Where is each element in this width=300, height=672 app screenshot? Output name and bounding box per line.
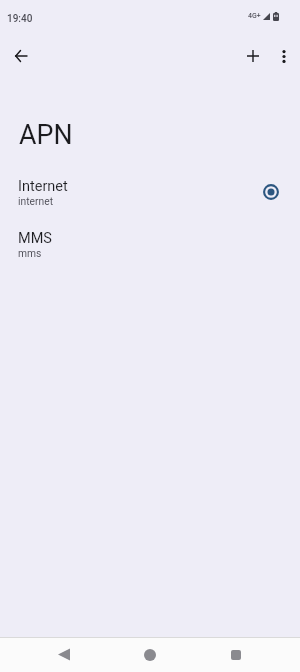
staticText: APN — [19, 119, 73, 150]
staticText: internet — [18, 195, 54, 207]
staticText: 4G+ — [248, 12, 261, 20]
button[interactable]: Recent apps — [218, 637, 254, 672]
staticText: MMS — [18, 230, 52, 247]
button[interactable]: Home — [132, 637, 168, 672]
button[interactable]: Add APN — [236, 39, 270, 73]
button[interactable]: More options — [267, 39, 300, 73]
button[interactable]: MMS — [0, 218, 300, 270]
staticText: mms — [18, 247, 42, 259]
staticText: 19:40 — [7, 13, 33, 25]
button[interactable]: Back — [46, 637, 82, 672]
button[interactable]: Navigate up — [4, 39, 38, 73]
button[interactable]: Internet — [0, 166, 300, 218]
staticText: Internet — [18, 178, 68, 195]
